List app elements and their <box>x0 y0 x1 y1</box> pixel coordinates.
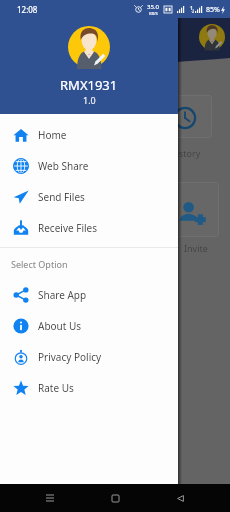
staticText: 35.0 <box>147 3 159 11</box>
staticText: About Us <box>38 319 82 333</box>
staticText: Send Files <box>38 190 85 204</box>
button[interactable]: Rate Us <box>0 372 178 403</box>
staticText: Web Share <box>38 159 89 173</box>
staticText: RMX1931 <box>60 76 118 94</box>
staticText: Receive Files <box>38 221 97 235</box>
staticText: Home <box>38 128 67 142</box>
button[interactable]: Back <box>165 484 195 512</box>
button[interactable]: Share App <box>0 279 178 310</box>
button[interactable]: About Us <box>0 310 178 341</box>
staticText: Rate Us <box>38 381 74 395</box>
button[interactable]: Recent apps <box>35 484 65 512</box>
staticText: Share App <box>38 288 87 302</box>
staticText: 85% <box>206 5 220 15</box>
button[interactable]: Web Share <box>0 150 178 181</box>
staticText: History <box>170 147 201 159</box>
staticText: Select Option <box>11 258 68 270</box>
staticText: Privacy Policy <box>38 350 102 364</box>
button[interactable]: Home <box>0 119 178 150</box>
staticText: Invite <box>184 242 208 254</box>
staticText: KB/S <box>149 11 158 16</box>
staticText: 12:08 <box>17 4 38 15</box>
button[interactable]: Send Files <box>0 181 178 212</box>
button[interactable]: Home <box>100 484 130 512</box>
staticText: 1.0 <box>83 94 96 106</box>
button[interactable]: Privacy Policy <box>0 341 178 372</box>
button[interactable]: Receive Files <box>0 212 178 243</box>
